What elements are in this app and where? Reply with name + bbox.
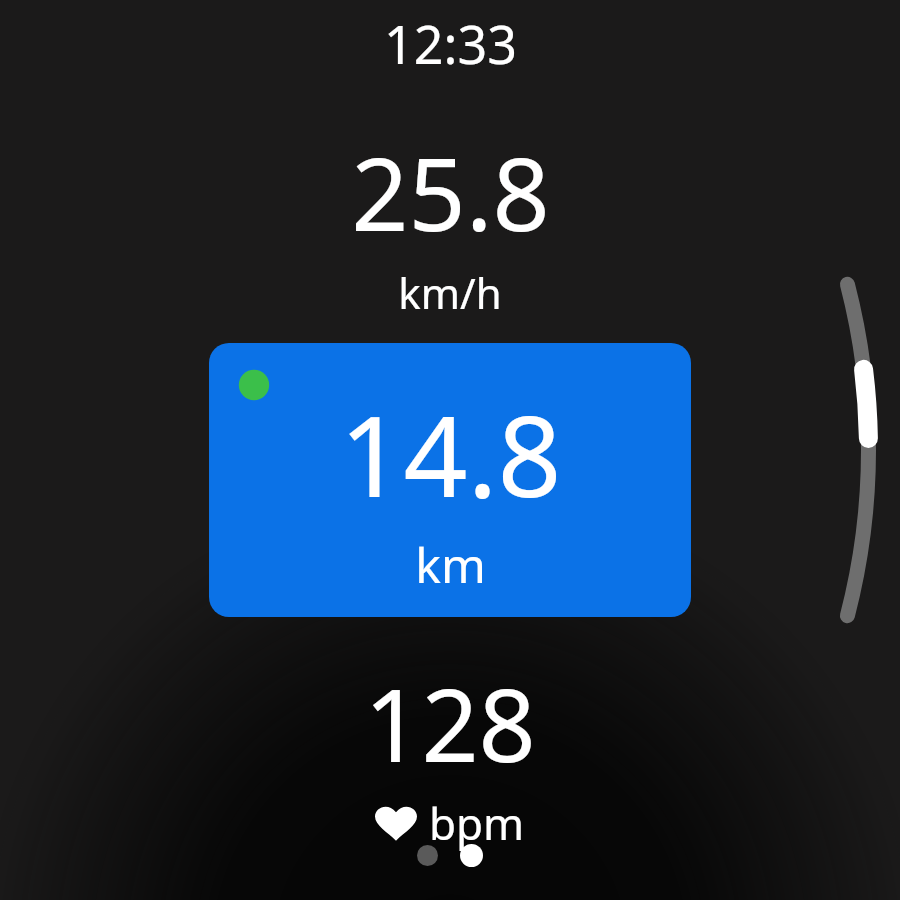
- staticText: 12:33: [384, 8, 517, 79]
- staticText: bpm: [429, 793, 525, 853]
- staticText: km: [415, 532, 486, 597]
- staticText: 14.8: [339, 377, 562, 530]
- staticText: 25.8: [351, 124, 550, 260]
- staticText: 128: [364, 655, 536, 791]
- button[interactable]: Page 2: [460, 844, 483, 867]
- staticText: km/h: [398, 264, 502, 321]
- other: Scroll position: [0, 0, 900, 900]
- button[interactable]: Page 1: [417, 845, 438, 866]
- button[interactable]: 14.8: [209, 343, 691, 617]
